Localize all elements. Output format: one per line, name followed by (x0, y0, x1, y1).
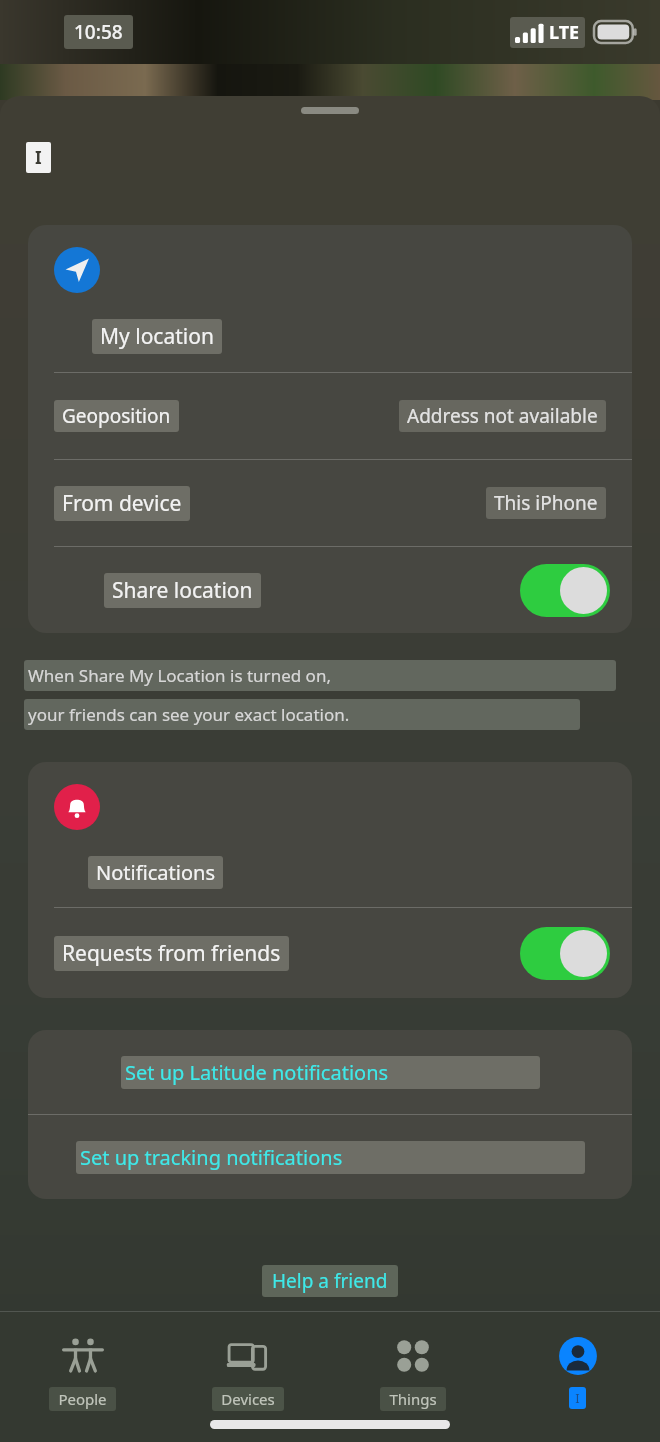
button[interactable]: Me (495, 1326, 660, 1415)
staticText: Devices (221, 1389, 275, 1409)
staticText: My location (100, 322, 214, 351)
button[interactable]: Set up tracking notifications (28, 1115, 632, 1199)
staticText: Set up tracking notifications (80, 1144, 343, 1171)
other: People (61, 1334, 105, 1378)
staticText: I (35, 146, 42, 169)
staticText: This iPhone (494, 490, 598, 516)
staticText: Notifications (96, 859, 215, 886)
staticText: Requests from friends (62, 939, 281, 968)
button[interactable]: Share location (28, 547, 632, 633)
staticText: I (575, 1389, 580, 1407)
staticText: LTE (549, 20, 580, 45)
button[interactable] (520, 927, 610, 980)
staticText: People (58, 1389, 107, 1409)
button[interactable]: People (0, 1326, 165, 1417)
button[interactable]: Set up Latitude notifications (28, 1030, 632, 1114)
staticText: Address not available (407, 403, 598, 429)
staticText: 10:58 (74, 19, 123, 45)
staticText: From device (62, 489, 182, 518)
staticText: Share location (112, 576, 253, 605)
other: Things (391, 1334, 435, 1378)
button[interactable] (520, 564, 610, 617)
button[interactable]: Devices (165, 1326, 330, 1417)
staticText: Geoposition (62, 403, 171, 429)
button[interactable]: From device (28, 460, 632, 546)
staticText: Help a friend (272, 1268, 388, 1294)
button[interactable]: Notifications (28, 762, 632, 907)
staticText: When Share My Location is turned on, (28, 664, 331, 687)
button[interactable]: Things (330, 1326, 495, 1417)
other: Me (556, 1334, 600, 1378)
button[interactable]: My location (28, 225, 632, 372)
staticText: Set up Latitude notifications (125, 1059, 389, 1086)
staticText: Things (389, 1389, 437, 1409)
other: Devices (226, 1334, 270, 1378)
button[interactable]: Help a friend (262, 1265, 398, 1297)
staticText: your friends can see your exact location… (28, 703, 350, 726)
button[interactable]: Requests from friends (28, 908, 632, 998)
button[interactable]: Geoposition (28, 373, 632, 459)
